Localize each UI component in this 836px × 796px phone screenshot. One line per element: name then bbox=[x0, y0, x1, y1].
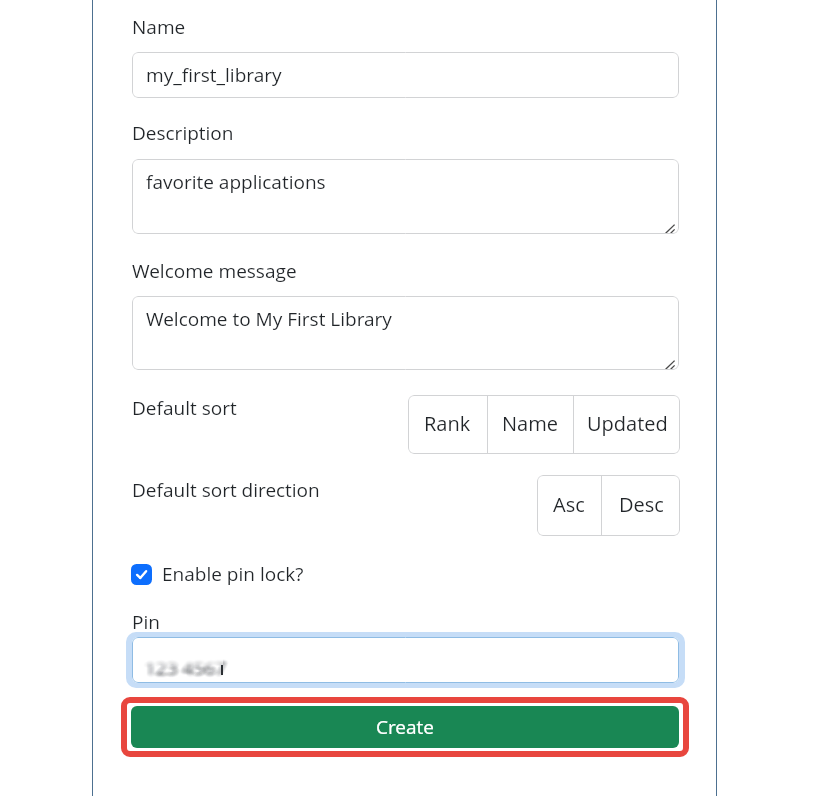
staticText: 123 4567 bbox=[144, 652, 225, 678]
staticText: 123 4567 bbox=[147, 653, 228, 679]
staticText: 123 4567 bbox=[146, 655, 227, 681]
staticText: Create bbox=[376, 714, 434, 740]
staticText: Rank bbox=[424, 410, 471, 437]
staticText: 123 4567 bbox=[147, 658, 228, 683]
staticText: Enable pin lock? bbox=[162, 561, 304, 587]
staticText: 123 4567 bbox=[147, 652, 228, 678]
staticText: Default sort bbox=[132, 395, 237, 421]
button[interactable]: Name bbox=[488, 395, 573, 454]
staticText: 123 4567 bbox=[144, 655, 225, 681]
staticText: 123 4567 bbox=[143, 656, 224, 682]
staticText: 123 4567 bbox=[142, 656, 223, 682]
staticText: 123 4567 bbox=[146, 654, 227, 680]
staticText: Name bbox=[132, 14, 186, 40]
staticText: 123 4567 bbox=[144, 654, 225, 680]
staticText: 123 4567 bbox=[145, 658, 226, 683]
staticText: Default sort direction bbox=[132, 477, 320, 503]
staticText: 123 4567 bbox=[146, 652, 227, 678]
button[interactable]: Asc bbox=[537, 475, 601, 536]
staticText: 123 4567 bbox=[148, 656, 229, 682]
staticText: 123 4567 bbox=[147, 656, 228, 682]
staticText: 123 4567 bbox=[148, 655, 229, 681]
staticText: 123 4567 bbox=[143, 655, 224, 681]
staticText: 123 4567 bbox=[146, 653, 227, 679]
staticText: 123 4567 bbox=[142, 654, 223, 680]
button[interactable]: Rank bbox=[408, 395, 487, 454]
button[interactable]: Updated bbox=[574, 395, 680, 454]
staticText: 123 4567 bbox=[149, 656, 230, 682]
staticText: 123 4567 bbox=[145, 653, 226, 679]
staticText: 123 4567 bbox=[143, 652, 224, 678]
staticText: 123 4567 bbox=[148, 653, 229, 679]
button[interactable]: favorite applications bbox=[132, 159, 679, 234]
staticText: 123 4567 bbox=[141, 655, 222, 681]
staticText: Welcome to My First Library bbox=[146, 306, 392, 332]
staticText: 123 4567 bbox=[143, 654, 224, 680]
staticText: 123 4567 bbox=[144, 656, 225, 682]
staticText: Asc bbox=[553, 491, 585, 518]
staticText: favorite applications bbox=[146, 169, 326, 195]
staticText: 123 4567 bbox=[145, 656, 226, 682]
staticText: 123 4567 bbox=[148, 657, 229, 683]
staticText: 123 4567 bbox=[147, 657, 228, 683]
staticText: 123 4567 bbox=[149, 655, 230, 681]
staticText: Name bbox=[502, 410, 559, 437]
staticText: Pin bbox=[132, 609, 160, 635]
button[interactable]: 123 4567 bbox=[132, 637, 679, 683]
staticText: 123 4567 bbox=[144, 657, 225, 683]
staticText: 123 4567 bbox=[141, 656, 222, 682]
staticText: 123 4567 bbox=[149, 654, 230, 680]
staticText: 123 4567 bbox=[147, 655, 228, 681]
staticText: 123 4567 bbox=[146, 657, 227, 683]
staticText: 123 4567 bbox=[146, 656, 227, 682]
staticText: 123 4567 bbox=[143, 657, 224, 683]
staticText: 123 4567 bbox=[144, 658, 225, 683]
staticText: 123 4567 bbox=[142, 653, 223, 679]
staticText: 123 4567 bbox=[148, 654, 229, 680]
staticText: my_first_library bbox=[146, 62, 282, 88]
button[interactable]: Enable pin lock? bbox=[131, 561, 304, 587]
button[interactable]: Welcome to My First Library bbox=[132, 296, 679, 370]
staticText: 123 4567 bbox=[147, 654, 228, 680]
staticText: 123 4567 bbox=[144, 653, 225, 679]
staticText: 123 4567 bbox=[145, 654, 226, 680]
staticText: 123 4567 bbox=[143, 658, 224, 683]
button[interactable]: Create bbox=[131, 706, 679, 748]
button[interactable]: Desc bbox=[602, 475, 680, 536]
staticText: Updated bbox=[587, 410, 668, 437]
staticText: 123 4567 bbox=[145, 657, 226, 683]
staticText: 123 4567 bbox=[146, 658, 227, 683]
button[interactable]: my_first_library bbox=[132, 52, 679, 98]
staticText: Description bbox=[132, 120, 234, 146]
staticText: Desc bbox=[619, 491, 664, 518]
staticText: 123 4567 bbox=[142, 657, 223, 683]
staticText: 123 4567 bbox=[141, 654, 222, 680]
staticText: 123 4567 bbox=[142, 655, 223, 681]
staticText: 123 4567 bbox=[145, 655, 226, 681]
staticText: Welcome message bbox=[132, 258, 297, 284]
staticText: 123 4567 bbox=[143, 653, 224, 679]
staticText: 123 4567 bbox=[145, 652, 226, 678]
